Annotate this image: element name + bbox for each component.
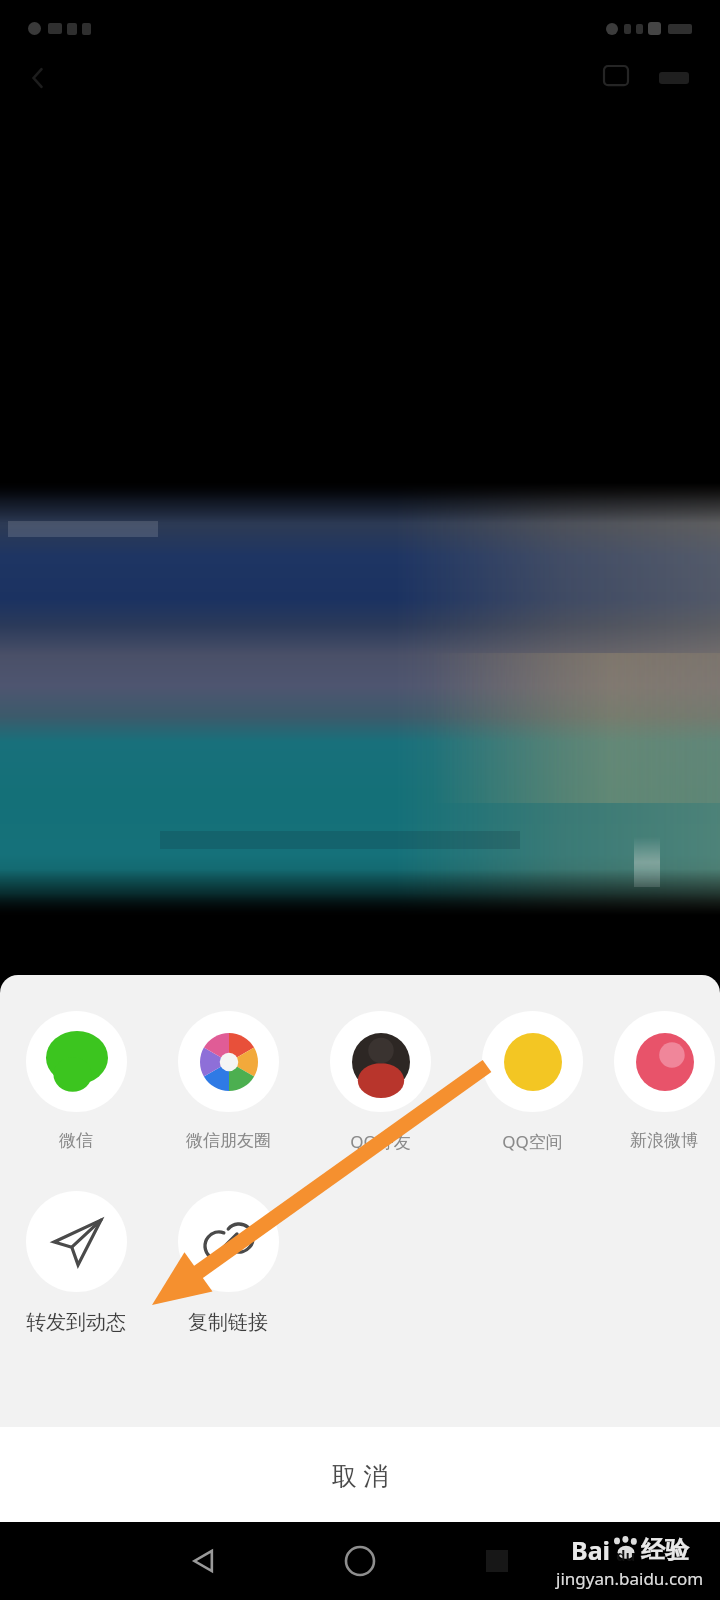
button[interactable]: 取 消 xyxy=(0,1427,720,1522)
staticText: du xyxy=(616,1545,636,1565)
button[interactable]: Home xyxy=(328,1529,392,1593)
staticText: 新浪微博 xyxy=(630,1130,698,1151)
staticText: 经验 xyxy=(641,1535,689,1565)
staticText: jingyan.baidu.com xyxy=(556,1567,704,1590)
button[interactable]: 复制链接 xyxy=(152,1191,304,1335)
button[interactable]: QQ好友 xyxy=(304,1011,456,1153)
button[interactable]: 微信朋友圈 xyxy=(152,1011,304,1151)
button[interactable]: 微信 xyxy=(0,1011,152,1151)
staticText: 复制链接 xyxy=(188,1310,268,1335)
button[interactable]: Comment xyxy=(590,56,642,100)
button[interactable]: 新浪微博 xyxy=(608,1011,720,1151)
button[interactable]: More options xyxy=(646,56,702,100)
staticText: 取 消 xyxy=(332,1458,389,1492)
button[interactable]: Back xyxy=(10,56,66,100)
button[interactable]: Back xyxy=(172,1529,236,1593)
staticText: QQ空间 xyxy=(502,1130,563,1153)
staticText: 微信 xyxy=(59,1130,93,1151)
button[interactable]: Recent apps xyxy=(468,1532,526,1590)
staticText: Bai xyxy=(571,1533,611,1567)
button[interactable]: 转发到动态 xyxy=(0,1191,152,1335)
staticText: QQ好友 xyxy=(350,1130,411,1153)
staticText: 微信朋友圈 xyxy=(186,1130,271,1151)
staticText: 转发到动态 xyxy=(26,1310,126,1335)
button[interactable]: QQ空间 xyxy=(456,1011,608,1153)
